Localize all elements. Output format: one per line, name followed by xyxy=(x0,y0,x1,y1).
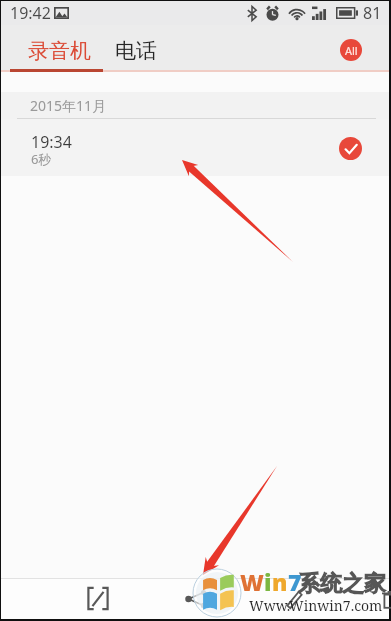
button[interactable]: Selected xyxy=(339,137,362,160)
staticText: 81 xyxy=(363,2,382,24)
staticText: 系统之家 xyxy=(298,570,386,598)
button[interactable]: 录音机 xyxy=(1,31,103,71)
button[interactable]: Rename xyxy=(245,578,343,619)
staticText: 19:34 xyxy=(31,131,72,153)
staticText: 7 xyxy=(288,566,302,597)
button[interactable]: 19:34 xyxy=(1,119,389,176)
staticText: i xyxy=(264,566,272,597)
staticText: W xyxy=(240,566,264,597)
button[interactable]: Trim xyxy=(49,578,147,619)
staticText: Www.Winwin7.com xyxy=(249,596,383,615)
button[interactable]: Delete xyxy=(343,578,391,619)
staticText: All xyxy=(345,43,358,58)
staticText: 2015年11月 xyxy=(30,96,107,115)
button[interactable]: All recordings xyxy=(340,39,362,61)
staticText: 电话 xyxy=(115,38,157,64)
staticText: 6秒 xyxy=(31,150,52,168)
staticText: 录音机 xyxy=(28,38,91,64)
button[interactable]: Share xyxy=(147,578,245,619)
staticText: n xyxy=(272,566,288,597)
staticText: 19:42 xyxy=(10,2,51,24)
button[interactable]: 电话 xyxy=(103,31,169,71)
